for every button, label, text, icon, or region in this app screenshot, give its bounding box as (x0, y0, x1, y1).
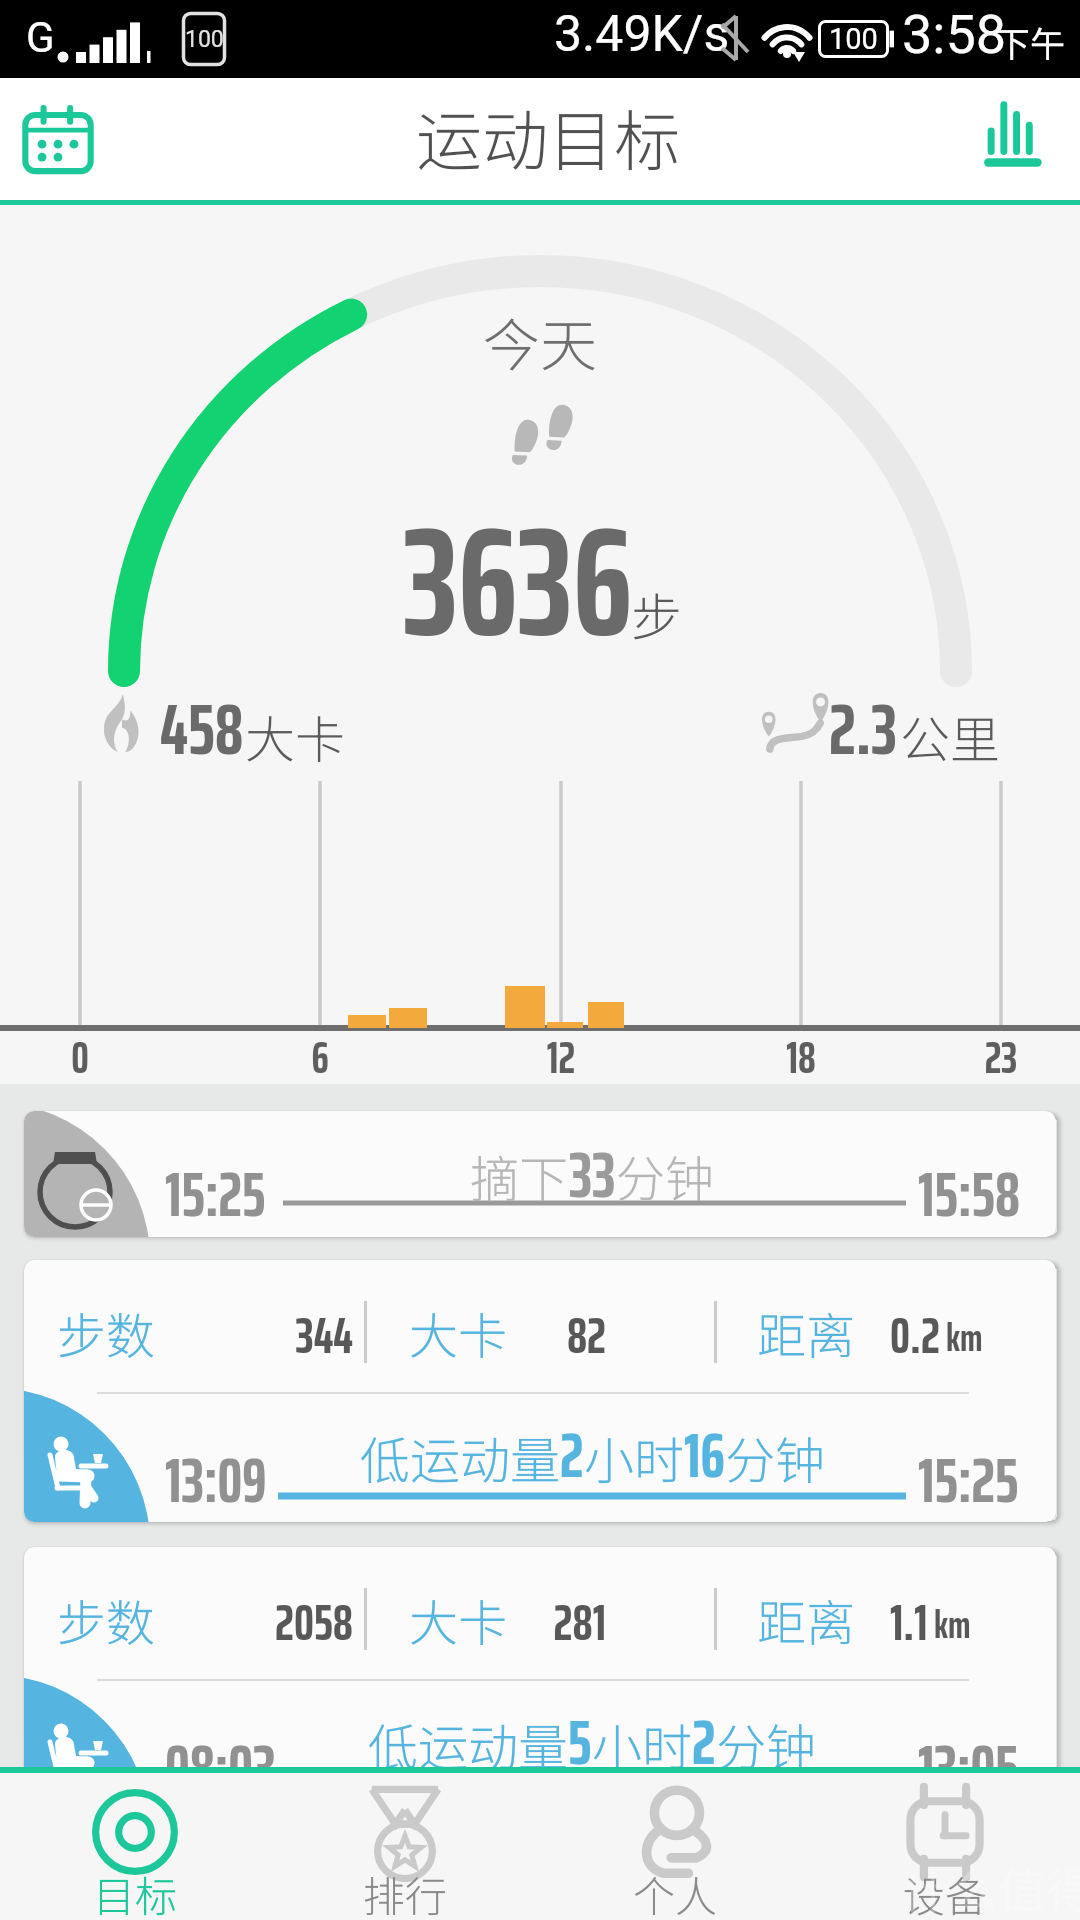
button[interactable]: 步数 (24, 1260, 1056, 1522)
staticText: 2058 (213, 1583, 353, 1662)
staticText: 15:25 (918, 1432, 1019, 1522)
button[interactable]: 排行 (270, 1773, 540, 1920)
button[interactable]: 步数 (24, 1547, 1056, 1809)
staticText: 0.2 (890, 1296, 940, 1375)
button[interactable]: Statistics (962, 92, 1058, 188)
staticText: 3.49K/s (554, 5, 730, 64)
staticText: 分钟 (725, 1421, 825, 1493)
staticText: km (934, 1595, 971, 1655)
staticText: 距离 (757, 1297, 856, 1368)
staticText: G (26, 13, 55, 62)
staticText: 目标 (0, 1863, 270, 1920)
staticText: 低运动量 (368, 1708, 568, 1780)
button[interactable]: Calendar (10, 92, 106, 188)
staticText: 3:58 (902, 3, 1007, 66)
staticText: 281 (514, 1583, 606, 1662)
staticText: 今天 (483, 300, 597, 383)
button[interactable]: 个人 (540, 1773, 810, 1920)
staticText: 6 (270, 1023, 370, 1092)
staticText: 100 (185, 26, 224, 53)
staticText: 2.3 (829, 673, 898, 785)
staticText: 12 (511, 1023, 611, 1092)
staticText: 08:03 (165, 1719, 276, 1809)
staticText: 1.1 (890, 1583, 928, 1662)
staticText: 33 (569, 1124, 616, 1225)
staticText: 摘下 (470, 1140, 569, 1211)
staticText: 2 (692, 1694, 716, 1792)
staticText: 下午 (995, 16, 1066, 67)
staticText: 分钟 (616, 1140, 715, 1211)
staticText: 大卡 (409, 1584, 508, 1655)
staticText: 18 (751, 1023, 851, 1092)
staticText: 15:25 (165, 1146, 266, 1237)
staticText: 个人 (540, 1863, 810, 1920)
button[interactable]: 15:25 (24, 1111, 1056, 1237)
staticText: 0 (30, 1023, 130, 1092)
button[interactable]: 目标 (0, 1773, 270, 1920)
staticText: 5 (568, 1694, 592, 1792)
staticText: 大卡 (245, 700, 345, 772)
staticText: 100 (829, 22, 878, 56)
staticText: 23 (951, 1023, 1051, 1092)
staticText: 344 (213, 1296, 353, 1375)
staticText: 低运动量 (360, 1421, 560, 1493)
staticText: 458 (160, 673, 244, 785)
staticText: 16 (684, 1407, 725, 1505)
staticText: 大卡 (409, 1297, 508, 1368)
staticText: 82 (514, 1296, 606, 1375)
staticText: 设备 (810, 1863, 1080, 1920)
staticText: 15:58 (918, 1146, 1020, 1237)
staticText: 什么值得买 (902, 1852, 1080, 1920)
staticText: 小时 (592, 1708, 692, 1780)
staticText: 小时 (584, 1421, 684, 1493)
staticText: 分钟 (716, 1708, 816, 1780)
button[interactable]: 设备 (810, 1773, 1080, 1920)
staticText: 3636 (403, 462, 633, 701)
staticText: 步 (631, 577, 683, 651)
staticText: 步数 (57, 1584, 156, 1655)
staticText: 步数 (57, 1297, 156, 1368)
staticText: km (946, 1308, 983, 1368)
staticText: 2 (560, 1407, 584, 1505)
staticText: 13:09 (165, 1432, 267, 1522)
staticText: 排行 (270, 1863, 540, 1920)
staticText: 距离 (757, 1584, 856, 1655)
staticText: 运动目标 (416, 88, 680, 184)
staticText: 13:05 (918, 1719, 1019, 1809)
staticText: 公里 (900, 700, 1000, 772)
